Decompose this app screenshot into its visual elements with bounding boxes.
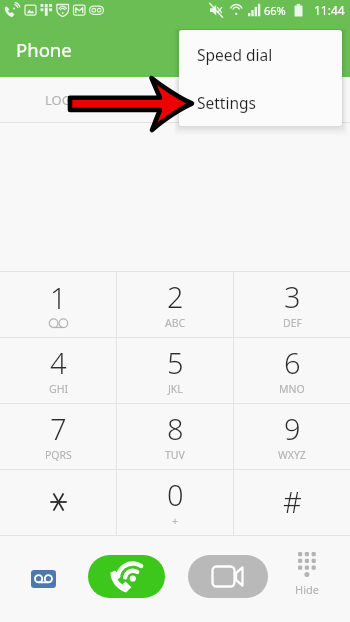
staticText: PQRS xyxy=(45,448,72,462)
button[interactable]: Hide keypad xyxy=(282,552,332,607)
button[interactable]: 0 xyxy=(117,470,233,536)
button[interactable]: Call xyxy=(88,555,165,598)
staticText: GHI xyxy=(49,382,68,396)
staticText: Settings xyxy=(197,92,256,113)
staticText: 9 xyxy=(284,409,301,448)
staticText: 3 xyxy=(284,277,301,316)
staticText: 1 xyxy=(50,278,67,317)
button[interactable]: CONTACTS xyxy=(233,77,350,123)
button[interactable]: # xyxy=(234,470,350,536)
staticText: 11:44 xyxy=(314,2,345,18)
staticText: LOG xyxy=(45,91,72,109)
button[interactable]: 7 xyxy=(0,404,116,470)
staticText: # xyxy=(283,482,302,521)
staticText: 8 xyxy=(167,409,184,448)
staticText: 2 xyxy=(167,277,184,316)
staticText: WXYZ xyxy=(278,448,306,462)
button[interactable]: 5 xyxy=(117,338,233,404)
staticText: FAVORITES xyxy=(141,91,208,109)
staticText: MNO xyxy=(279,382,305,396)
staticText: TUV xyxy=(165,448,185,462)
staticText: 7 xyxy=(50,409,67,448)
button[interactable] xyxy=(0,470,116,536)
staticText: DEF xyxy=(283,316,302,330)
staticText: 0 xyxy=(167,475,184,514)
button[interactable]: Speed dial xyxy=(179,30,342,78)
button[interactable]: 3 xyxy=(234,272,350,338)
staticText: ABC xyxy=(165,316,186,330)
button[interactable]: 9 xyxy=(234,404,350,470)
staticText: JKL xyxy=(168,382,183,396)
button[interactable]: Settings xyxy=(179,78,342,126)
staticText: Hide xyxy=(295,582,319,597)
button[interactable]: 4 xyxy=(0,338,116,404)
staticText: 66% xyxy=(264,3,286,18)
staticText: Phone xyxy=(16,37,72,62)
staticText: 5 xyxy=(167,343,184,382)
staticText: + xyxy=(172,514,179,528)
button[interactable]: 6 xyxy=(234,338,350,404)
button[interactable]: Voicemail xyxy=(18,558,68,600)
button[interactable]: 1 xyxy=(0,272,116,338)
button[interactable]: LOG xyxy=(0,77,116,123)
button[interactable]: Video call xyxy=(188,555,268,598)
button[interactable]: 2 xyxy=(117,272,233,338)
button[interactable]: 8 xyxy=(117,404,233,470)
staticText: 4 xyxy=(50,343,67,382)
staticText: Speed dial xyxy=(197,44,273,65)
button[interactable]: FAVORITES xyxy=(116,77,233,123)
staticText: 6 xyxy=(284,343,301,382)
